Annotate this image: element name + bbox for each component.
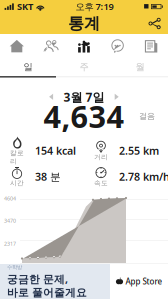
staticText: 칼로리 xyxy=(10,149,24,165)
button[interactable]: Next day xyxy=(108,88,124,106)
staticText: 3월 7일 xyxy=(63,89,104,105)
staticText: 통계 xyxy=(68,14,100,33)
staticText: 4,634 xyxy=(43,96,124,136)
button[interactable]: 일 xyxy=(0,58,56,76)
button[interactable]: Advertisement xyxy=(0,264,168,299)
staticText: 154 kcal xyxy=(35,143,76,158)
staticText: 오후 7:19 xyxy=(76,0,114,13)
staticText: 바로 풀어줄게요 xyxy=(7,286,87,299)
staticText: 주 xyxy=(79,61,88,73)
button[interactable]: Friends xyxy=(34,34,67,58)
staticText: 2.55 km xyxy=(119,143,159,158)
staticText: App Store xyxy=(125,276,162,287)
staticText: 2317 xyxy=(4,240,16,247)
button[interactable]: Statistics xyxy=(67,34,101,58)
staticText: 거리 xyxy=(94,153,108,161)
staticText: 일 xyxy=(23,61,32,73)
staticText: 1158 xyxy=(4,265,16,272)
staticText: 3470 xyxy=(4,217,16,224)
staticText: SKT xyxy=(17,0,33,13)
staticText: 4604 xyxy=(4,195,16,202)
staticText: 궁금한 문제, xyxy=(7,272,68,286)
staticText: 2.78 km/h xyxy=(119,169,168,184)
button[interactable]: 월 xyxy=(112,58,168,76)
button[interactable]: Previous day xyxy=(43,88,59,106)
button[interactable]: 주 xyxy=(56,58,112,76)
button[interactable]: Chat xyxy=(101,34,134,58)
staticText: 걸음 xyxy=(139,111,155,121)
staticText: 월 xyxy=(135,61,144,73)
button[interactable]: Home xyxy=(0,34,34,58)
staticText: 38 분 xyxy=(35,169,61,184)
button[interactable]: Feed xyxy=(134,34,168,58)
staticText: 시간 xyxy=(10,179,24,187)
staticText: 속도 xyxy=(94,179,108,187)
staticText: 수학방 xyxy=(7,264,22,270)
button[interactable]: Share xyxy=(143,14,166,33)
